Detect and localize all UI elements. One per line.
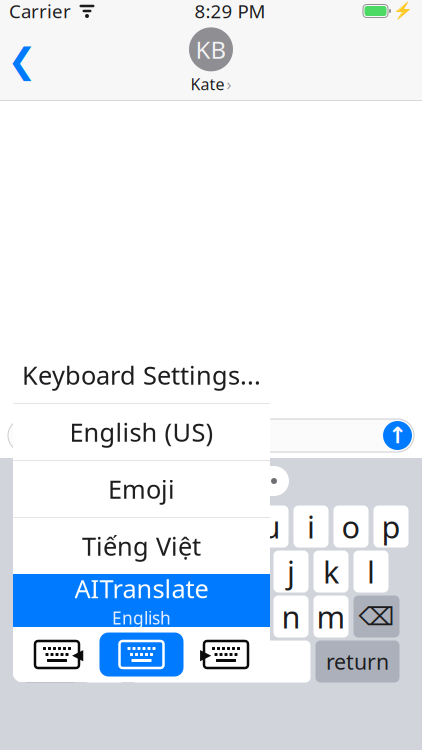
button[interactable]: Next keyboard xyxy=(198,639,254,669)
staticText: h xyxy=(241,551,260,592)
staticText: a xyxy=(42,551,59,592)
staticText: q xyxy=(21,506,40,547)
button[interactable]: s xyxy=(73,550,108,592)
staticText: return xyxy=(326,647,389,676)
button[interactable]: return xyxy=(315,640,399,682)
button[interactable]: KB xyxy=(189,27,233,95)
staticText: m xyxy=(316,596,345,637)
staticText: p xyxy=(381,506,400,547)
staticText: ❮ xyxy=(7,41,36,81)
button[interactable]: z xyxy=(73,595,108,637)
button[interactable]: b xyxy=(233,595,268,637)
button[interactable]: Back xyxy=(0,33,44,89)
staticText: English xyxy=(112,606,171,629)
staticText: l xyxy=(367,551,375,592)
button[interactable]: Emoji xyxy=(13,461,270,517)
button[interactable]: Current keyboard xyxy=(99,632,183,676)
staticText: v xyxy=(203,596,219,637)
staticText: c xyxy=(163,596,178,637)
button[interactable]: t xyxy=(173,505,208,547)
button[interactable]: o xyxy=(333,505,368,547)
staticText: Tiếng Việt xyxy=(82,529,201,563)
button[interactable]: w xyxy=(53,505,88,547)
staticText: Carrier xyxy=(9,0,71,23)
button[interactable]: Previous keyboard xyxy=(29,639,85,669)
staticText: y xyxy=(223,506,239,547)
staticText: j xyxy=(287,551,295,592)
button[interactable]: ⇧ xyxy=(22,595,68,637)
button[interactable]: Send xyxy=(383,421,412,450)
button[interactable]: Tiếng Việt xyxy=(13,518,270,574)
button[interactable]: m xyxy=(313,595,348,637)
button[interactable]: x xyxy=(113,595,148,637)
staticText: d xyxy=(121,551,140,592)
staticText: u xyxy=(261,506,280,547)
button[interactable]: l xyxy=(353,550,388,592)
staticText: n xyxy=(281,596,300,637)
staticText: Keyboard Settings... xyxy=(22,358,261,392)
staticText: b xyxy=(241,596,260,637)
button[interactable]: AITranslate xyxy=(13,574,270,627)
staticText: r xyxy=(144,506,157,547)
button[interactable]: h xyxy=(233,550,268,592)
staticText: w xyxy=(59,506,83,547)
staticText: x xyxy=(123,596,139,637)
button[interactable]: Dictate xyxy=(83,640,125,682)
staticText: English (US) xyxy=(69,415,213,449)
staticText: ⌫ xyxy=(358,602,394,631)
staticText: 123 xyxy=(32,647,68,676)
staticText: s xyxy=(83,551,98,592)
button[interactable]: p xyxy=(373,505,408,547)
staticText: ◀ xyxy=(72,646,83,663)
button[interactable]: f xyxy=(153,550,188,592)
button[interactable]: 123 xyxy=(22,640,78,682)
staticText: Emoji xyxy=(108,472,175,506)
button[interactable]: v xyxy=(193,595,228,637)
button[interactable]: n xyxy=(273,595,308,637)
button[interactable]: k xyxy=(313,550,348,592)
button[interactable]: r xyxy=(133,505,168,547)
staticText: ▶ xyxy=(200,646,211,663)
staticText: › xyxy=(226,73,231,95)
button[interactable]: English (US) xyxy=(13,404,270,460)
staticText: f xyxy=(165,551,176,592)
staticText: t xyxy=(185,506,196,547)
staticText: AITranslate xyxy=(74,572,208,605)
staticText: 8:29 PM xyxy=(194,0,265,23)
button[interactable]: y xyxy=(213,505,248,547)
button[interactable]: g xyxy=(193,550,228,592)
button[interactable]: e xyxy=(93,505,128,547)
button[interactable]: space xyxy=(130,640,310,682)
staticText: Kate xyxy=(190,73,224,95)
staticText: ↑ xyxy=(388,423,407,448)
staticText: KB xyxy=(195,33,226,65)
button[interactable]: j xyxy=(273,550,308,592)
button[interactable]: a xyxy=(33,550,68,592)
staticText: k xyxy=(323,551,339,592)
staticText: ⚡ xyxy=(393,2,413,20)
button[interactable]: i xyxy=(293,505,328,547)
button[interactable]: u xyxy=(253,505,288,547)
staticText: g xyxy=(201,551,220,592)
button[interactable]: d xyxy=(113,550,148,592)
staticText: ⇧ xyxy=(34,601,56,632)
staticText: e xyxy=(102,506,119,547)
button[interactable]: q xyxy=(13,505,48,547)
button[interactable]: Keyboard Settings... xyxy=(13,347,270,403)
staticText: space xyxy=(192,647,249,676)
staticText: i xyxy=(307,506,315,547)
button[interactable]: c xyxy=(153,595,188,637)
staticText: o xyxy=(341,506,360,547)
staticText: 🎤 xyxy=(89,648,119,675)
staticText: z xyxy=(84,596,98,637)
button[interactable]: ⌫ xyxy=(353,595,399,637)
